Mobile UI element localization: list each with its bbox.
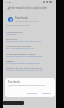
staticText: versión 448.0.0.33.109 — [15, 20, 38, 23]
staticText: Facebook — [15, 16, 28, 20]
staticText: Permisos — [6, 37, 17, 40]
button[interactable]: Uso de datos móviles — [6, 44, 56, 51]
staticText: Uso de datos móviles — [6, 44, 31, 47]
button[interactable] — [3, 101, 24, 105]
button[interactable]: Almacenamiento y caché — [6, 52, 56, 59]
staticText: Tiempo de uso de la aplicación — [6, 66, 43, 69]
staticText: Ajustes de la aplicación — [6, 24, 30, 27]
button[interactable]: Aceptar — [41, 90, 52, 95]
staticText: Facebook — [8, 80, 21, 84]
button[interactable]: Back — [5, 5, 11, 11]
staticText: ¿Quieres desinstalar esta aplicación? — [8, 84, 46, 87]
staticText: Información de la aplicación — [9, 6, 48, 10]
staticText: Almacenamiento y caché — [6, 52, 36, 55]
staticText: 25,1 MB usados desde 1 jul. — [6, 47, 35, 50]
staticText: Batería — [6, 59, 15, 62]
staticText: 14:05 — [5, 0, 12, 3]
staticText: Mostrar controles de tiempo de uso — [6, 69, 43, 72]
staticText: 186 MB usados en almacenamiento — [6, 55, 43, 58]
button[interactable]: Cancelar — [26, 90, 38, 95]
button[interactable]: Permisos — [6, 37, 56, 44]
staticText: Almacenamiento, Cámara y 4 más — [6, 40, 41, 43]
staticText: Cancelar — [27, 91, 37, 94]
button[interactable]: Tiempo de uso de la aplicación — [6, 66, 56, 73]
button[interactable]: Batería — [6, 59, 56, 66]
button[interactable]: Notificaciones — [6, 30, 56, 37]
staticText: Notificaciones — [6, 30, 23, 33]
staticText: 0 % de uso desde la última carga — [6, 62, 40, 65]
staticText: Permitidas — [6, 33, 18, 36]
staticText: Aceptar — [42, 91, 51, 94]
